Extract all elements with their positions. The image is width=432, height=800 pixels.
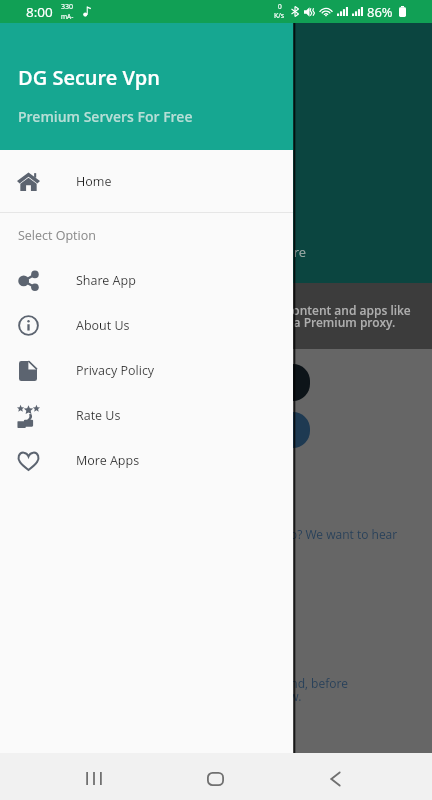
staticText: Do you have a tip? We want to hear <box>200 526 398 542</box>
button[interactable]: Home <box>0 150 293 212</box>
button[interactable]: More Apps <box>0 438 293 483</box>
staticText: Select Option <box>18 227 96 244</box>
staticText: 330 <box>61 2 74 12</box>
staticText: Be Secure <box>246 243 307 261</box>
staticText: More Apps <box>76 452 140 469</box>
staticText: Premium Servers For Free <box>18 107 193 126</box>
button[interactable]: Back <box>299 755 372 800</box>
button[interactable]: Privacy Policy <box>0 348 293 393</box>
staticText: Please read terms and, before <box>180 675 348 691</box>
staticText: Share App <box>76 272 136 289</box>
staticText: 86% <box>367 3 393 21</box>
staticText: 8:00 <box>26 3 53 21</box>
staticText: 0 <box>278 2 282 11</box>
staticText: mA- <box>61 12 74 21</box>
staticText: never before with a Premium proxy. <box>188 314 396 330</box>
staticText: Home <box>76 173 112 190</box>
staticText: About Us <box>76 317 130 334</box>
staticText: K/s <box>274 11 285 21</box>
button[interactable]: Home <box>179 755 252 800</box>
staticText: you continue now. <box>199 688 302 704</box>
staticText: Unblock all content and apps like <box>219 302 411 318</box>
button[interactable]: Recent apps <box>57 755 130 800</box>
staticText: Rate Us <box>76 407 121 424</box>
button[interactable]: About Us <box>0 303 293 348</box>
staticText: Privacy Policy <box>76 362 155 379</box>
button[interactable]: Share App <box>0 258 293 303</box>
button[interactable]: Rate Us <box>0 393 293 438</box>
staticText: DG Secure Vpn <box>18 64 160 91</box>
